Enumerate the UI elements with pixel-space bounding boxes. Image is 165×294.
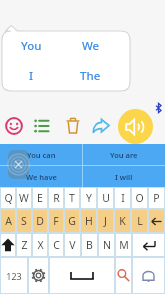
button[interactable]: Settings — [28, 257, 49, 294]
button[interactable]: T — [64, 187, 80, 209]
button[interactable]: L — [131, 209, 148, 233]
staticText: R — [53, 191, 60, 205]
button[interactable]: Delete — [60, 113, 85, 138]
button[interactable]: Space — [49, 257, 115, 294]
staticText: W — [19, 191, 29, 205]
button[interactable]: E — [32, 187, 48, 209]
button[interactable]: F — [48, 209, 64, 233]
button[interactable]: I — [114, 187, 131, 209]
staticText: A — [5, 214, 12, 228]
staticText: G — [68, 214, 76, 228]
button[interactable]: Backspace — [148, 209, 165, 233]
button[interactable]: Enter — [132, 233, 165, 257]
button[interactable]: R — [48, 187, 64, 209]
button[interactable]: H — [80, 209, 97, 233]
button[interactable]: We — [61, 31, 120, 61]
staticText: I — [121, 191, 125, 205]
staticText: S — [21, 214, 27, 228]
staticText: O — [135, 191, 144, 205]
button[interactable]: N — [98, 233, 115, 257]
staticText: D — [36, 214, 44, 228]
button[interactable]: Y — [80, 187, 97, 209]
staticText: N — [103, 238, 111, 252]
button[interactable]: G — [64, 209, 80, 233]
staticText: You — [21, 38, 42, 54]
button[interactable]: 123 — [0, 257, 28, 294]
staticText: We — [82, 38, 100, 54]
staticText: H — [85, 214, 93, 228]
staticText: I will — [115, 172, 133, 182]
button[interactable]: The — [61, 61, 120, 91]
button[interactable]: W — [16, 187, 32, 209]
button[interactable]: Notifications — [132, 257, 165, 294]
staticText: We have — [26, 172, 57, 182]
button[interactable]: You are — [83, 144, 165, 165]
staticText: I — [29, 68, 34, 84]
button[interactable]: I — [2, 61, 61, 91]
staticText: V — [69, 238, 76, 252]
staticText: M — [119, 238, 129, 252]
button[interactable]: Q — [0, 187, 16, 209]
button[interactable]: Z — [16, 233, 32, 257]
button[interactable]: C — [48, 233, 64, 257]
button[interactable]: You can — [0, 144, 82, 165]
button[interactable]: We have — [0, 166, 82, 187]
button[interactable]: Shift — [0, 233, 16, 257]
staticText: L — [137, 214, 143, 228]
button[interactable]: M — [115, 233, 132, 257]
button[interactable]: V — [64, 233, 81, 257]
staticText: C — [53, 238, 60, 252]
button[interactable]: O — [131, 187, 148, 209]
button[interactable]: S — [16, 209, 32, 233]
button[interactable]: Share — [88, 113, 113, 138]
button[interactable]: Emoji — [1, 113, 26, 138]
button[interactable]: X — [32, 233, 48, 257]
staticText: K — [119, 214, 126, 228]
staticText: T — [69, 191, 75, 205]
button[interactable]: U — [97, 187, 114, 209]
button[interactable]: D — [32, 209, 48, 233]
staticText: U — [102, 191, 110, 205]
button[interactable]: Search — [115, 257, 132, 294]
staticText: F — [53, 214, 59, 228]
staticText: X — [37, 238, 44, 252]
staticText: Y — [86, 191, 92, 205]
staticText: Q — [4, 191, 13, 205]
button[interactable]: J — [97, 209, 114, 233]
button[interactable]: P — [148, 187, 165, 209]
staticText: E — [37, 191, 43, 205]
button[interactable]: B — [81, 233, 98, 257]
staticText: You are — [110, 150, 138, 160]
button[interactable]: You — [2, 31, 61, 61]
staticText: Z — [21, 238, 28, 252]
button[interactable]: A — [0, 209, 16, 233]
button[interactable]: Word list — [29, 113, 54, 138]
staticText: J — [104, 214, 107, 228]
staticText: B — [86, 238, 93, 252]
button[interactable]: K — [114, 209, 131, 233]
staticText: 123 — [6, 270, 22, 282]
button[interactable]: Bluetooth — [152, 101, 165, 114]
button[interactable]: I will — [83, 166, 165, 187]
staticText: P — [153, 191, 160, 205]
button[interactable]: Speak — [118, 109, 153, 144]
staticText: The — [80, 68, 101, 84]
staticText: You can — [27, 150, 56, 160]
